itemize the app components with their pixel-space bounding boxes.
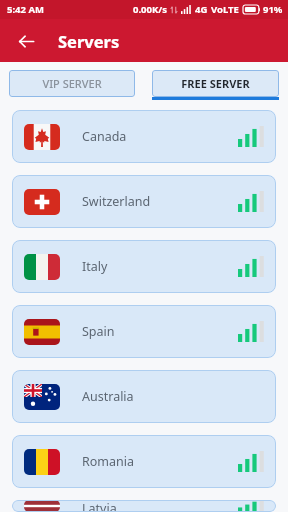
staticText: Australia (82, 388, 134, 405)
staticText: Latvia (82, 500, 117, 512)
staticText: 91% (263, 3, 283, 16)
button[interactable]: Romania (12, 435, 276, 488)
staticText: 4G (195, 3, 208, 16)
button[interactable]: Switzerland (12, 175, 276, 228)
staticText: Servers (58, 30, 120, 52)
staticText: Spain (82, 323, 115, 340)
staticText: Italy (82, 258, 108, 275)
staticText: Romania (82, 453, 135, 470)
staticText: 5:42 AM (7, 3, 44, 16)
staticText: VoLTE (211, 3, 239, 16)
staticText: Canada (82, 128, 127, 145)
staticText: Switzerland (82, 193, 151, 210)
button[interactable]: Canada (12, 110, 276, 163)
staticText: FREE SERVER (181, 76, 250, 91)
staticText: 0.00K/s (133, 3, 167, 16)
button[interactable]: Back (10, 25, 42, 57)
button[interactable]: Italy (12, 240, 276, 293)
staticText: VIP SERVER (42, 76, 102, 91)
button[interactable]: Spain (12, 305, 276, 358)
button[interactable]: Latvia (12, 500, 276, 512)
button[interactable]: Australia (12, 370, 276, 423)
button[interactable]: FREE SERVER (152, 70, 279, 100)
button[interactable]: VIP SERVER (9, 70, 135, 100)
